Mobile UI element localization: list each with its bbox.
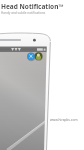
- staticText: www.hirapks.com: [50, 117, 78, 121]
- staticText: Head Notification™: [1, 2, 64, 11]
- staticText: Handy and subtle notifications: [1, 11, 46, 15]
